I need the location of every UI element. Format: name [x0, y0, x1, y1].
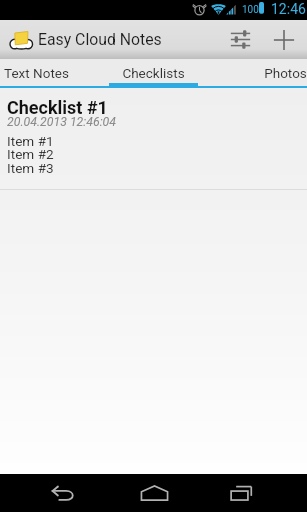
staticText: Text Notes — [4, 65, 69, 81]
staticText: 20.04.2013 12:46:04 — [7, 115, 117, 129]
staticText: Checklist #1 — [7, 97, 108, 118]
staticText: Item #1 Item #2 Item #3 — [7, 133, 54, 176]
button[interactable]: Text Notes — [0, 59, 90, 88]
button[interactable]: Back — [17, 474, 107, 512]
button[interactable]: Checklist #1 — [0, 88, 307, 190]
staticText: Checklists — [122, 65, 185, 81]
button[interactable]: Recent apps — [199, 474, 289, 512]
staticText: Photos — [264, 65, 307, 81]
button[interactable]: Easy Cloud Notes — [0, 30, 219, 49]
button[interactable]: Home — [109, 474, 199, 512]
button[interactable]: New note — [261, 20, 307, 59]
staticText: 100 — [242, 4, 259, 16]
staticText: Easy Cloud Notes — [38, 30, 162, 49]
button[interactable]: Settings — [219, 20, 261, 59]
staticText: 12:46 — [271, 1, 306, 17]
button[interactable]: Photos — [231, 59, 307, 88]
button[interactable]: Checklists — [109, 59, 198, 88]
